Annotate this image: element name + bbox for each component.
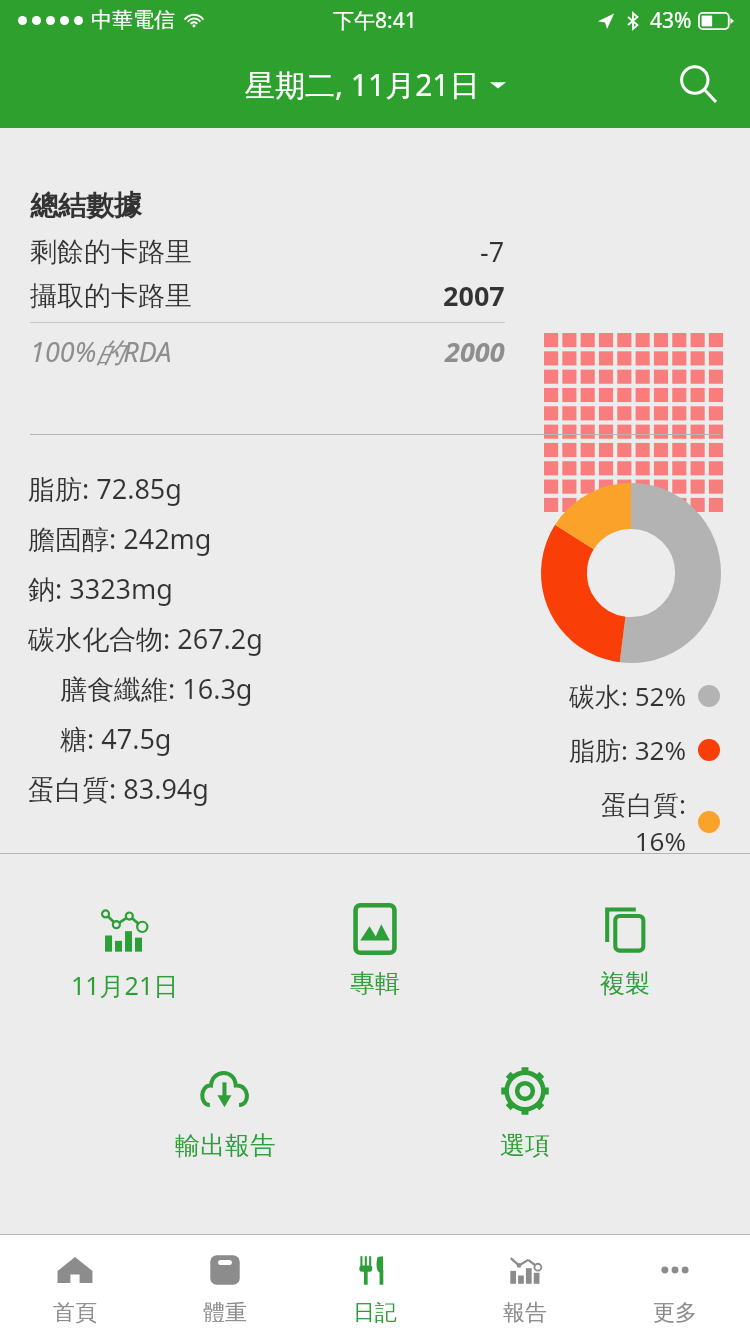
staticText: 蛋白質: 16% bbox=[545, 786, 686, 858]
staticText: 2000 bbox=[445, 333, 505, 370]
button[interactable]: 更多 bbox=[600, 1235, 750, 1334]
staticText: 攝取的卡路里 bbox=[30, 279, 443, 313]
staticText: 鈉: 3323mg bbox=[28, 570, 173, 607]
staticText: 43% bbox=[650, 6, 692, 35]
button[interactable]: 首頁 bbox=[0, 1235, 150, 1334]
button[interactable]: 11月21日 bbox=[0, 896, 250, 1008]
staticText: 複製 bbox=[600, 968, 650, 999]
staticText: 選項 bbox=[500, 1130, 550, 1161]
staticText: 專輯 bbox=[350, 968, 400, 999]
button[interactable]: 體重 bbox=[150, 1235, 300, 1334]
staticText: 星期二, 11月21日 bbox=[245, 64, 480, 105]
staticText: 脂肪: 32% bbox=[545, 732, 686, 768]
staticText: 2007 bbox=[443, 277, 505, 314]
button[interactable]: 輸出報告 bbox=[75, 1058, 375, 1167]
staticText: 總結數據 bbox=[30, 188, 142, 223]
staticText: -7 bbox=[480, 233, 505, 270]
staticText: 首頁 bbox=[53, 1299, 97, 1327]
button[interactable]: 報告 bbox=[450, 1235, 600, 1334]
button[interactable]: 日記 bbox=[300, 1235, 450, 1334]
button[interactable]: 星期二, 11月21日 bbox=[235, 58, 516, 111]
staticText: 日記 bbox=[353, 1299, 397, 1327]
button[interactable]: 專輯 bbox=[250, 896, 500, 1005]
staticText: 蛋白質: 83.94g bbox=[28, 770, 209, 807]
staticText: 膳食纖維: 16.3g bbox=[60, 670, 253, 707]
staticText: 剩餘的卡路里 bbox=[30, 235, 480, 269]
staticText: 中華電信 bbox=[91, 7, 175, 33]
staticText: 碳水化合物: 267.2g bbox=[28, 620, 263, 657]
staticText: 下午8:41 bbox=[333, 6, 417, 35]
staticText: 報告 bbox=[503, 1299, 547, 1327]
button[interactable]: 複製 bbox=[500, 896, 750, 1005]
staticText: 100%的RDA bbox=[30, 333, 445, 370]
staticText: 碳水: 52% bbox=[545, 678, 686, 714]
staticText: 膽固醇: 242mg bbox=[28, 520, 212, 557]
staticText: 體重 bbox=[203, 1299, 247, 1327]
button[interactable]: 選項 bbox=[375, 1058, 675, 1167]
button[interactable]: Search bbox=[670, 56, 726, 112]
staticText: 11月21日 bbox=[71, 968, 179, 1002]
staticText: 脂肪: 72.85g bbox=[28, 470, 182, 507]
staticText: 糖: 47.5g bbox=[60, 720, 172, 757]
staticText: 更多 bbox=[653, 1299, 697, 1327]
staticText: 輸出報告 bbox=[175, 1130, 275, 1161]
